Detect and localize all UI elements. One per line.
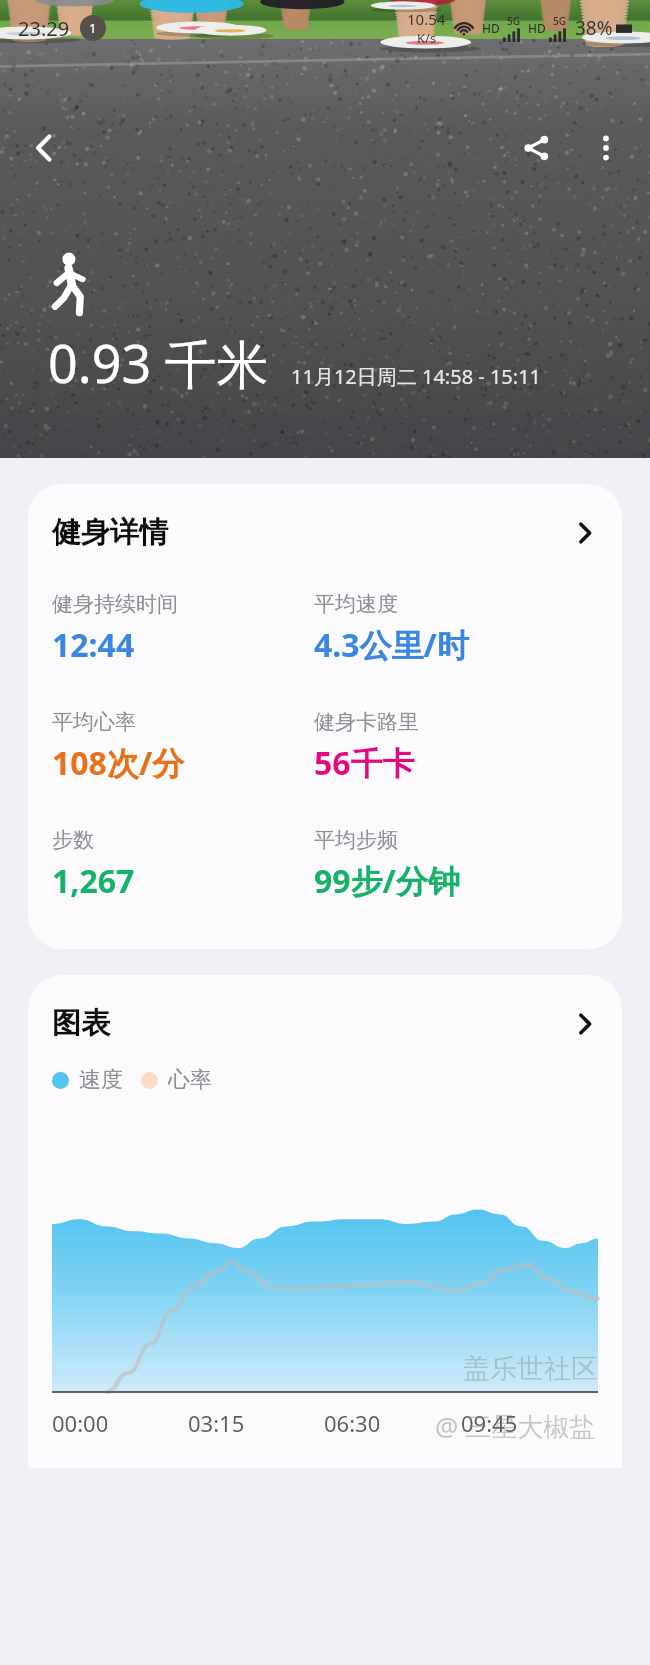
staticText: K/s bbox=[417, 29, 437, 47]
staticText: @ 三星大椒盐 bbox=[435, 1408, 596, 1444]
staticText: 图表 bbox=[52, 1005, 110, 1042]
staticText: 4.3公里/时 bbox=[314, 623, 469, 667]
staticText: 速度 bbox=[79, 1066, 123, 1094]
staticText: 00:00 bbox=[52, 1408, 109, 1438]
staticText: 0.93 千米 bbox=[48, 327, 269, 398]
staticText: 心率 bbox=[168, 1066, 212, 1094]
button[interactable]: Back bbox=[12, 116, 76, 180]
staticText: 健身卡路里 bbox=[314, 709, 419, 735]
staticText: 平均心率 bbox=[52, 709, 136, 735]
staticText: 38% bbox=[575, 15, 613, 41]
staticText: HD bbox=[482, 20, 500, 36]
staticText: 1 bbox=[89, 19, 97, 37]
button[interactable]: 健身详情 bbox=[28, 484, 622, 949]
staticText: 1,267 bbox=[52, 859, 135, 903]
staticText: 5G bbox=[507, 14, 520, 28]
button[interactable]: More options bbox=[574, 116, 638, 180]
staticText: 108次/分 bbox=[52, 741, 185, 785]
staticText: 平均速度 bbox=[314, 591, 398, 617]
staticText: HD bbox=[528, 20, 546, 36]
staticText: 盖乐世社区 bbox=[463, 1352, 598, 1386]
button[interactable]: 图表 bbox=[28, 975, 622, 1468]
button[interactable]: Share bbox=[504, 116, 568, 180]
staticText: 56千卡 bbox=[314, 741, 415, 785]
staticText: 11月12日周二 14:58 - 15:11 bbox=[291, 363, 542, 390]
staticText: 健身持续时间 bbox=[52, 591, 178, 617]
staticText: 99步/分钟 bbox=[314, 859, 460, 903]
staticText: 平均步频 bbox=[314, 827, 398, 853]
staticText: 09:45 bbox=[461, 1408, 518, 1438]
staticText: 03:15 bbox=[188, 1408, 245, 1438]
staticText: 5G bbox=[553, 14, 566, 28]
staticText: 12:44 bbox=[52, 623, 135, 667]
staticText: 健身详情 bbox=[52, 514, 168, 551]
staticText: 23:29 bbox=[18, 15, 70, 42]
staticText: 06:30 bbox=[324, 1408, 381, 1438]
staticText: 步数 bbox=[52, 827, 94, 853]
staticText: 10.54 bbox=[407, 9, 446, 29]
